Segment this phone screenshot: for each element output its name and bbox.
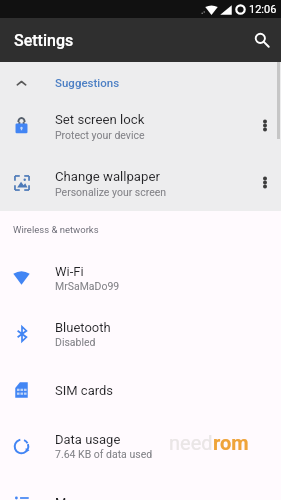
staticText: SIM cards	[55, 383, 114, 398]
staticText: 7.64 KB of data used	[55, 448, 153, 460]
staticText: Wireless & networks	[13, 224, 99, 235]
staticText: Set screen lock	[55, 112, 145, 127]
staticText: Personalize your screen	[55, 186, 167, 198]
button[interactable]: Search	[244, 22, 280, 58]
button[interactable]: Bluetooth	[0, 306, 281, 362]
staticText: More	[55, 495, 85, 500]
staticText: 12:06	[249, 3, 277, 16]
staticText: rom	[213, 431, 249, 454]
button[interactable]: Collapse suggestions	[0, 62, 281, 97]
button[interactable]: More options	[248, 154, 281, 211]
staticText: need	[169, 431, 213, 454]
button[interactable]: Set screen lock	[0, 97, 281, 154]
button[interactable]: SIM cards	[0, 362, 281, 418]
staticText: Change wallpaper	[55, 169, 160, 184]
staticText: Settings	[14, 31, 74, 50]
staticText: Data usage	[55, 432, 121, 447]
staticText: Protect your device	[55, 129, 145, 141]
button[interactable]: More options	[248, 97, 281, 154]
button[interactable]: More	[0, 474, 281, 500]
staticText: MrSaMaDo99	[55, 280, 120, 292]
button[interactable]: Data usage	[0, 418, 281, 474]
staticText: Wi-Fi	[55, 264, 84, 279]
button[interactable]: Wi-Fi	[0, 250, 281, 306]
button[interactable]: Change wallpaper	[0, 154, 281, 211]
staticText: Bluetooth	[55, 320, 111, 335]
staticText: Disabled	[55, 336, 96, 348]
staticText: Suggestions	[55, 76, 120, 89]
